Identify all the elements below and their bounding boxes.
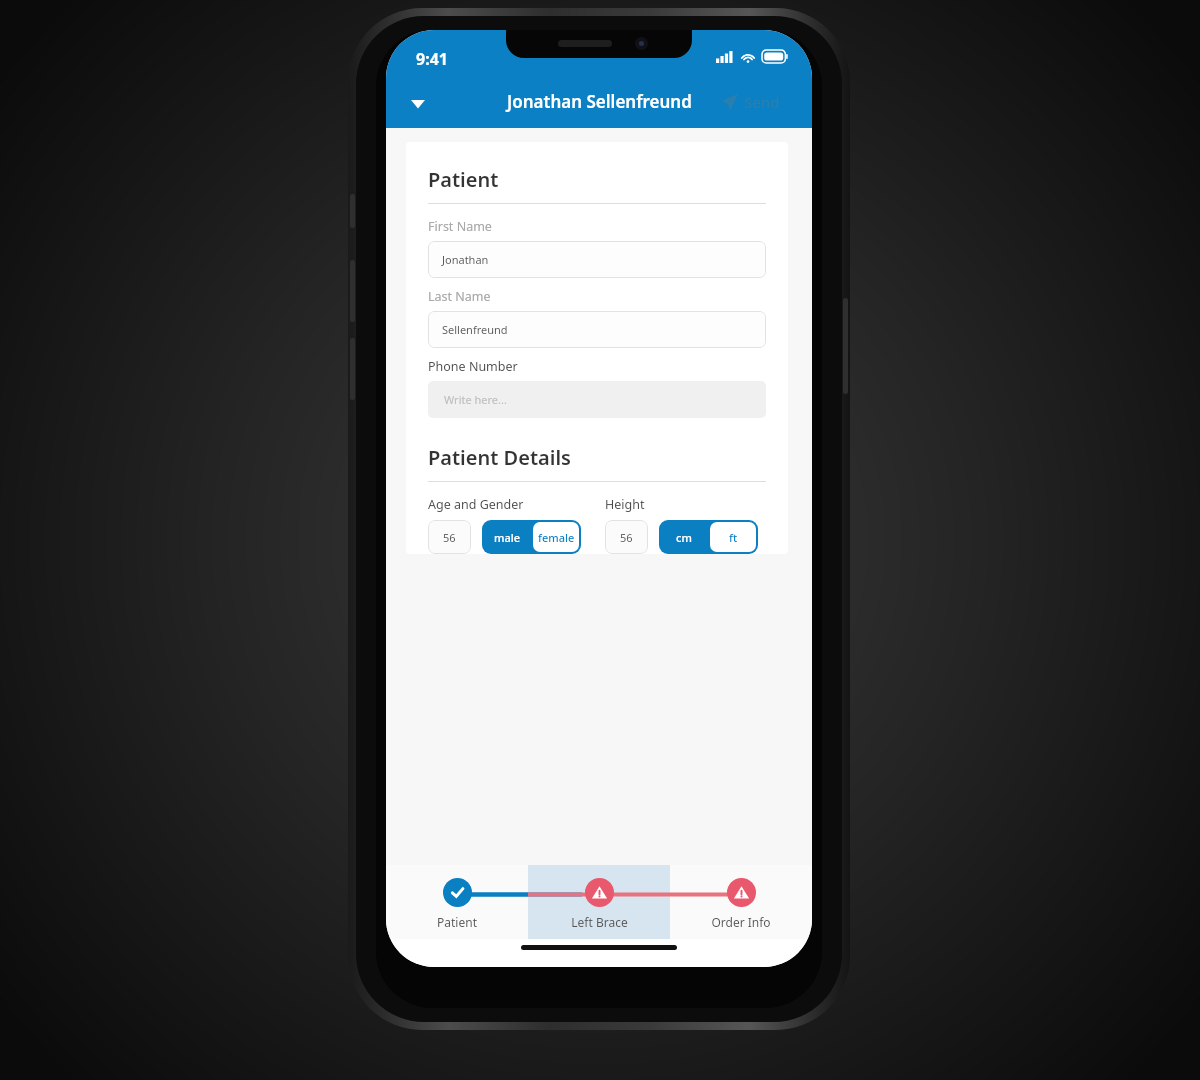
staticText: Write here... — [444, 392, 507, 407]
button[interactable]: 56 — [605, 520, 648, 554]
button[interactable]: Sellenfreund — [428, 311, 766, 348]
staticText: Order Info — [711, 914, 771, 930]
staticText: cm — [676, 530, 692, 545]
button[interactable]: Left Brace — [528, 865, 670, 939]
staticText: 9:41 — [416, 48, 448, 70]
button[interactable]: 56 — [428, 520, 471, 554]
staticText: Patient — [428, 166, 499, 193]
button[interactable]: cm — [659, 520, 758, 554]
staticText: Left Brace — [571, 914, 628, 930]
staticText: 56 — [443, 530, 456, 545]
button[interactable]: Jonathan — [428, 241, 766, 278]
staticText: 56 — [620, 530, 633, 545]
staticText: female — [538, 530, 575, 545]
staticText: Last Name — [428, 288, 491, 305]
button[interactable]: Order Info — [670, 865, 812, 939]
staticText: First Name — [428, 218, 492, 235]
button[interactable]: Send — [722, 88, 780, 116]
staticText: Jonathan Sellenfreund — [507, 90, 692, 113]
staticText: Jonathan — [442, 252, 489, 267]
staticText: Phone Number — [428, 358, 518, 375]
staticText: Sellenfreund — [442, 322, 508, 337]
button[interactable]: male — [482, 520, 581, 554]
button[interactable]: Write here... — [428, 381, 766, 418]
staticText: male — [494, 530, 520, 545]
button[interactable]: Patient — [386, 865, 528, 939]
staticText: ft — [729, 530, 738, 545]
staticText: Patient — [437, 914, 477, 930]
button[interactable]: Collapse — [400, 86, 436, 122]
staticText: Send — [744, 92, 780, 112]
staticText: Patient Details — [428, 444, 571, 471]
staticText: Height — [605, 496, 645, 513]
staticText: Age and Gender — [428, 496, 524, 513]
